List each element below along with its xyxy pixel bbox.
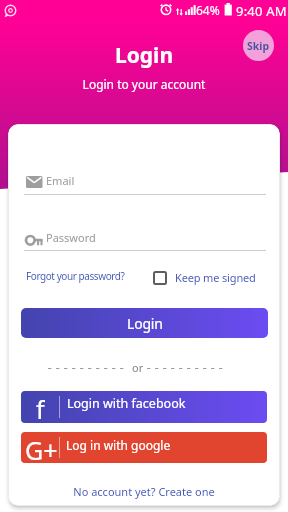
button[interactable]: Forgot your password? — [26, 269, 125, 283]
staticText: Log in with google — [66, 437, 171, 453]
staticText: or — [132, 360, 144, 375]
staticText: Login with facebook — [67, 395, 186, 412]
staticText: Login — [127, 314, 163, 333]
staticText: f — [36, 392, 45, 423]
button[interactable]: No account yet? Create one — [8, 484, 280, 499]
staticText: 64% — [196, 2, 220, 18]
button[interactable]: Skip — [243, 30, 274, 61]
staticText: Keep me signed — [175, 270, 256, 285]
button[interactable]: Login — [21, 308, 268, 338]
staticText: Login to your account — [0, 76, 288, 92]
button[interactable]: f — [21, 391, 267, 423]
staticText: Login — [0, 41, 288, 70]
staticText: Forgot your password? — [26, 269, 125, 283]
staticText: Email — [46, 173, 75, 188]
staticText: 9:40 AM — [236, 2, 287, 20]
button[interactable]: Keep me signed — [153, 270, 256, 285]
staticText: G+ — [25, 433, 58, 463]
staticText: Skip — [247, 39, 270, 53]
staticText: No account yet? Create one — [8, 484, 280, 499]
button[interactable]: G+ — [21, 432, 267, 463]
staticText: Password — [46, 230, 96, 245]
